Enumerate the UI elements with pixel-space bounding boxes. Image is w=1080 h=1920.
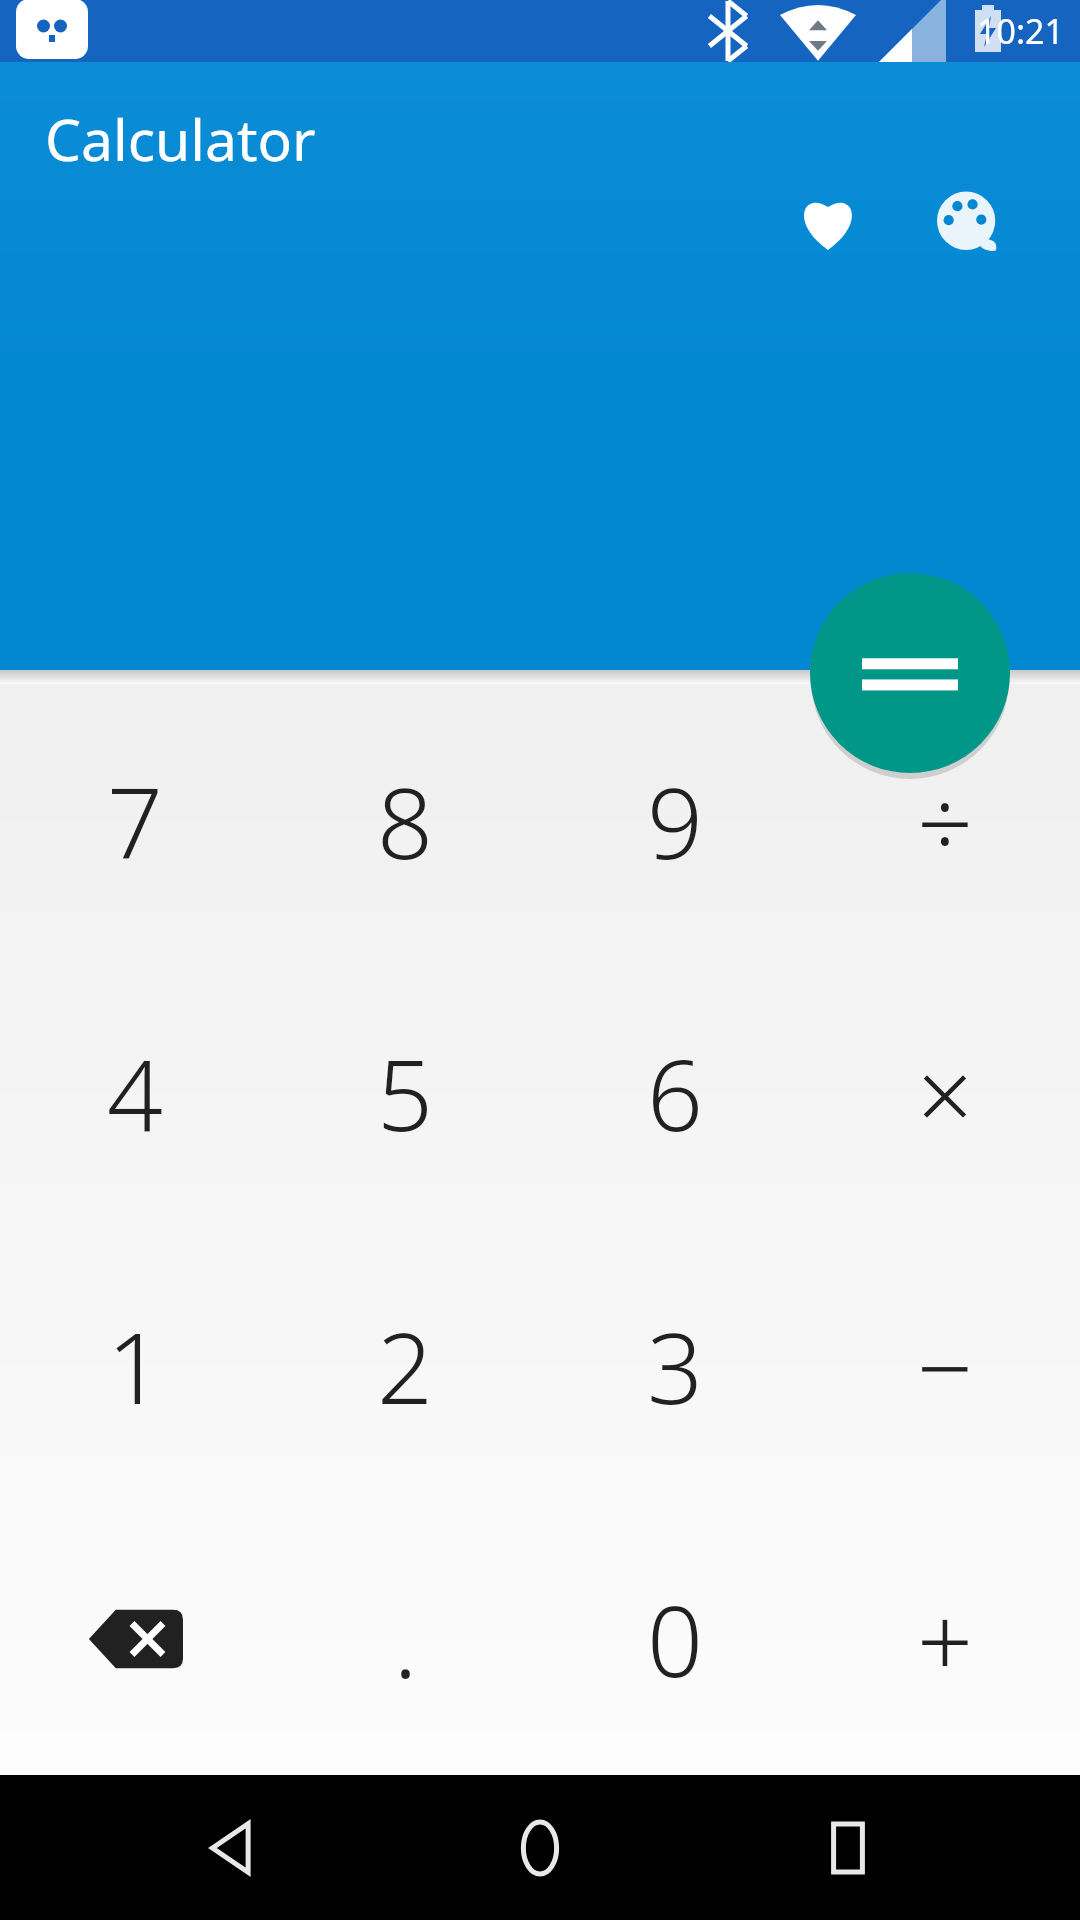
staticText: 3 <box>647 1299 703 1432</box>
button[interactable]: 1 <box>0 1229 270 1502</box>
button[interactable]: 9 <box>540 684 810 956</box>
staticText: 6 <box>647 1026 703 1159</box>
button[interactable]: 8 <box>270 684 540 956</box>
staticText: 4 <box>107 1026 163 1159</box>
staticText: 10:21 <box>977 8 1064 54</box>
button[interactable]: 3 <box>540 1229 810 1502</box>
button[interactable]: Recent apps <box>773 1775 923 1920</box>
staticText: 0 <box>647 1572 703 1705</box>
staticText: 7 <box>107 754 163 887</box>
button[interactable]: Favorite <box>768 162 888 282</box>
button[interactable]: 4 <box>0 956 270 1229</box>
staticText: + <box>917 1572 973 1705</box>
button[interactable]: − <box>810 1229 1080 1502</box>
staticText: . <box>393 1571 418 1707</box>
button[interactable]: 6 <box>540 956 810 1229</box>
button[interactable]: × <box>810 956 1080 1229</box>
staticText: 9 <box>647 754 703 887</box>
staticText: 2 <box>377 1299 433 1432</box>
staticText: 1 <box>107 1299 163 1432</box>
staticText: × <box>917 1026 973 1159</box>
button[interactable]: Change theme <box>908 162 1028 282</box>
button[interactable]: Home <box>465 1775 615 1920</box>
button[interactable]: Equals <box>810 573 1010 773</box>
staticText: Calculator <box>45 100 316 178</box>
button[interactable]: Backspace <box>0 1502 270 1775</box>
staticText: 5 <box>377 1026 433 1159</box>
staticText: 8 <box>377 754 433 887</box>
button[interactable]: ÷ <box>810 684 1080 956</box>
button[interactable]: 5 <box>270 956 540 1229</box>
button[interactable]: 2 <box>270 1229 540 1502</box>
button[interactable]: + <box>810 1502 1080 1775</box>
staticText: ÷ <box>917 754 973 887</box>
staticText: − <box>917 1299 973 1432</box>
button[interactable]: 7 <box>0 684 270 956</box>
button[interactable]: 0 <box>540 1502 810 1775</box>
button[interactable]: Back <box>158 1775 308 1920</box>
button[interactable]: . <box>270 1502 540 1775</box>
